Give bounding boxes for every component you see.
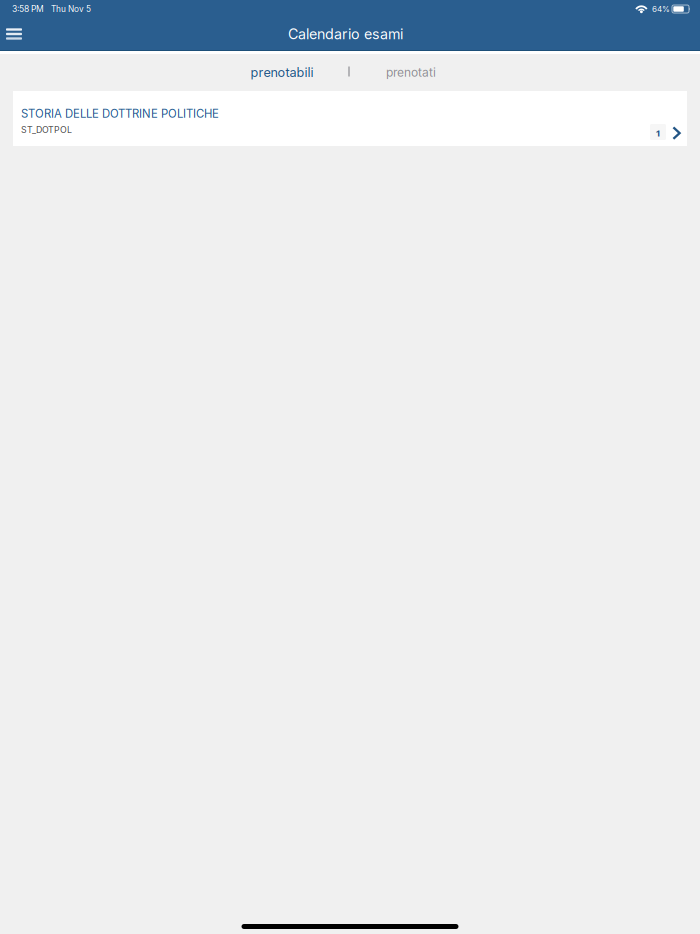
button[interactable]: prenotati: [375, 59, 447, 86]
staticText: ST_DOTPOL: [21, 124, 72, 135]
staticText: 3:58 PM: [12, 4, 44, 14]
button[interactable]: Menu: [0, 18, 28, 50]
staticText: Calendario esami: [288, 25, 403, 43]
staticText: prenotati: [386, 65, 436, 80]
staticText: prenotabili: [250, 65, 313, 80]
staticText: Thu Nov 5: [51, 4, 91, 14]
button[interactable]: prenotabili: [241, 59, 323, 86]
staticText: STORIA DELLE DOTTRINE POLITICHE: [21, 107, 219, 120]
staticText: 64%: [652, 4, 670, 14]
button[interactable]: STORIA DELLE DOTTRINE POLITICHE: [13, 91, 687, 146]
staticText: 1: [655, 127, 660, 139]
